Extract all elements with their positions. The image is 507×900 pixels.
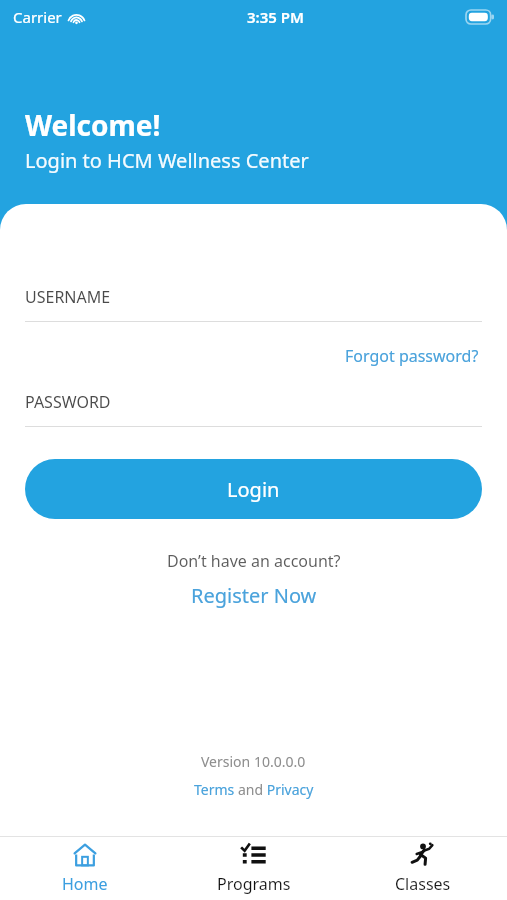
button[interactable]: PASSWORD: [25, 391, 482, 427]
staticText: Login: [227, 476, 280, 503]
staticText: Classes: [395, 873, 451, 895]
staticText: Welcome!: [25, 106, 161, 144]
staticText: Register Now: [191, 582, 317, 609]
staticText: Login to HCM Wellness Center: [25, 147, 309, 174]
button[interactable]: Login: [25, 459, 482, 519]
staticText: Forgot password?: [345, 345, 479, 367]
button[interactable]: Classes: [338, 837, 507, 900]
button[interactable]: Terms and Privacy: [190, 779, 318, 800]
button[interactable]: Register Now: [185, 581, 323, 610]
staticText: Home: [62, 873, 108, 895]
button[interactable]: Forgot password?: [342, 342, 482, 370]
button[interactable]: USERNAME: [25, 286, 482, 322]
staticText: Don’t have an account?: [167, 550, 341, 572]
staticText: PASSWORD: [25, 391, 111, 413]
staticText: Carrier: [13, 7, 62, 27]
staticText: Programs: [217, 873, 291, 895]
button[interactable]: Programs: [169, 837, 338, 900]
other: Classes: [410, 842, 436, 868]
button[interactable]: Home: [0, 837, 169, 900]
staticText: USERNAME: [25, 286, 111, 308]
other: Programs: [241, 842, 267, 868]
staticText: 3:35 PM: [247, 7, 304, 27]
other: Home: [72, 842, 98, 868]
staticText: Version 10.0.0.0: [201, 752, 306, 771]
staticText: Terms and Privacy: [194, 780, 314, 799]
